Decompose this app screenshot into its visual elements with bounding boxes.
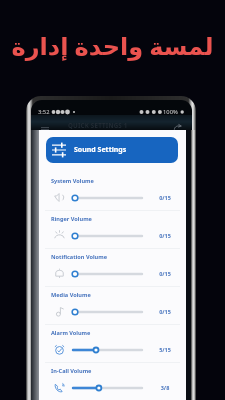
staticText: Alarm Volume [51,329,91,337]
button[interactable]: Sound Settings [46,137,178,163]
button[interactable]: Notification Volume [39,249,186,287]
button[interactable]: Alarm Volume [39,325,186,363]
button[interactable]: In-Call Volume [39,363,186,400]
staticText: System Volume [51,177,94,185]
staticText: Notification Volume [51,253,108,261]
button[interactable]: Ringer Volume [39,211,186,249]
staticText: 3:52 [38,108,50,116]
button[interactable]: Menu [38,122,52,136]
staticText: 5/15 [157,346,173,353]
staticText: 0/15 [157,194,173,201]
staticText: 100% [163,108,178,116]
button[interactable]: Share [171,120,185,134]
staticText: 3/8 [157,384,173,391]
staticText: Ringer Volume [51,215,92,223]
staticText: 0/15 [157,308,173,315]
staticText: QUICK SETTINGS 1 [68,121,128,129]
staticText: In-Call Volume [51,367,92,375]
staticText: 0/15 [157,232,173,239]
staticText: لمسة واحدة إدارة [0,29,225,62]
staticText: Sound Settings [74,145,127,155]
button[interactable]: Media Volume [39,287,186,325]
staticText: Media Volume [51,291,91,299]
staticText: 0/15 [157,270,173,277]
button[interactable]: System Volume [39,173,186,211]
